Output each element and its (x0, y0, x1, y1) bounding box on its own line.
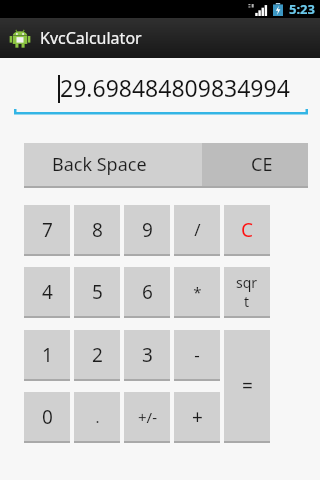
staticText: C (241, 217, 254, 243)
staticText: Back Space (52, 152, 147, 177)
button[interactable]: = (224, 330, 270, 443)
staticText: 3 (142, 342, 153, 368)
staticText: KvcCalculator (40, 27, 142, 49)
staticText: / (194, 218, 201, 241)
button[interactable]: 3 (124, 330, 170, 381)
staticText: 5 (92, 279, 103, 305)
button[interactable]: 1 (24, 330, 70, 381)
button[interactable]: - (174, 330, 220, 381)
button[interactable]: 0 (24, 392, 70, 443)
button[interactable]: + (174, 392, 220, 443)
staticText: - (194, 343, 200, 366)
staticText: 7 (42, 217, 53, 243)
button[interactable]: +/- (124, 392, 170, 443)
button[interactable]: 6 (124, 267, 170, 318)
staticText: 8 (92, 217, 103, 243)
button[interactable]: C (224, 205, 270, 256)
staticText: 4 (42, 279, 53, 305)
staticText: 1 (42, 342, 53, 368)
button[interactable]: 2 (74, 330, 120, 381)
staticText: 0 (42, 404, 53, 430)
staticText: +/- (138, 407, 157, 427)
button[interactable]: 7 (24, 205, 70, 256)
staticText: CE (251, 152, 273, 177)
staticText: 5:23 (289, 0, 315, 18)
staticText: 29.698484809834994 (60, 72, 290, 103)
staticText: sqr (236, 273, 258, 292)
button[interactable]: 5 (74, 267, 120, 318)
staticText: t (244, 292, 250, 311)
staticText: * (193, 282, 202, 302)
staticText: 2 (92, 342, 103, 368)
button[interactable]: 8 (74, 205, 120, 256)
button[interactable]: 4 (24, 267, 70, 318)
button[interactable]: Back Space (24, 143, 202, 188)
staticText: + (192, 404, 203, 430)
staticText: 9 (142, 217, 153, 243)
button[interactable]: * (174, 267, 220, 318)
staticText: 6 (142, 279, 153, 305)
button[interactable]: . (74, 392, 120, 443)
button[interactable]: 9 (124, 205, 170, 256)
staticText: . (95, 407, 100, 427)
button[interactable]: / (174, 205, 220, 256)
button[interactable]: CE (172, 143, 308, 188)
staticText: = (242, 373, 253, 399)
button[interactable]: Square root (224, 267, 270, 318)
